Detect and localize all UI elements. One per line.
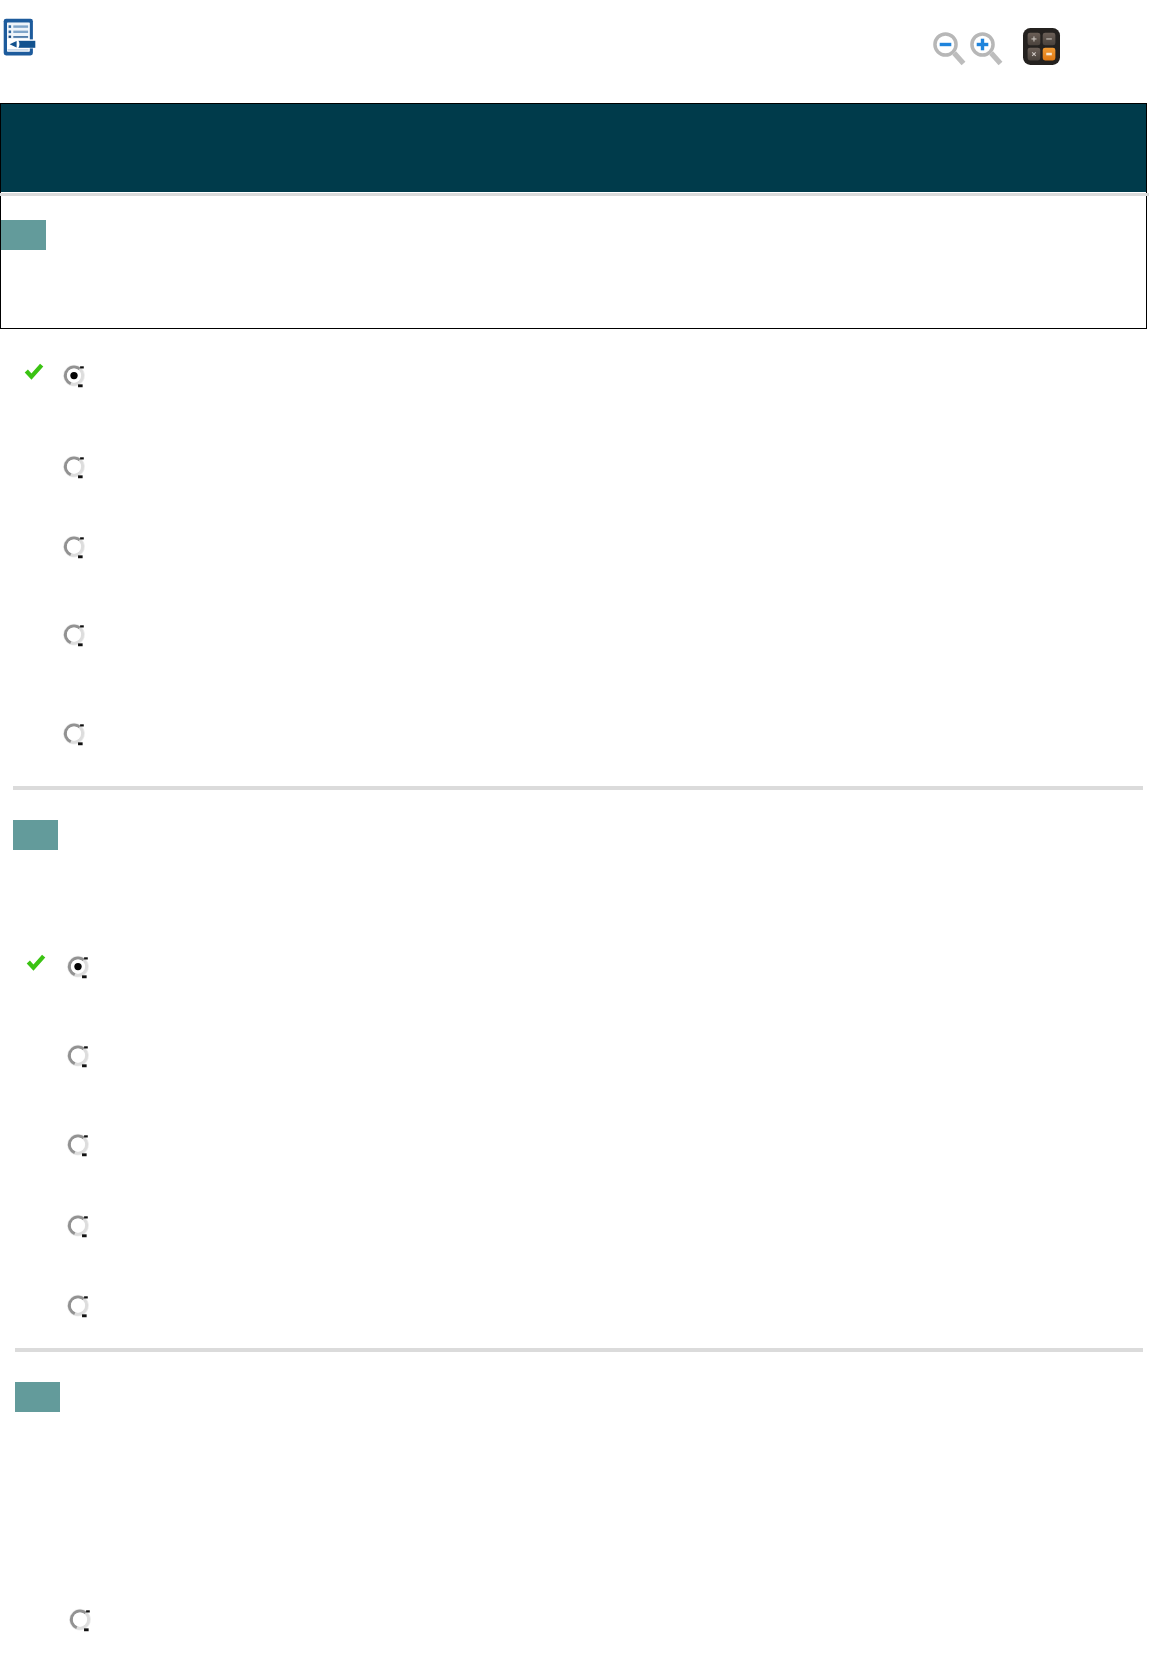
button[interactable]: Answer B [0,1015,1149,1095]
button[interactable]: Answer D [0,594,1149,674]
button[interactable]: Calculator [1023,28,1060,65]
button[interactable]: Answer C [0,1104,1149,1184]
button[interactable]: Survey [3,18,39,56]
button[interactable]: Answer E [0,1265,1149,1345]
button[interactable]: Answer E [0,690,1149,776]
button[interactable]: Question card [0,103,1147,329]
button[interactable]: Zoom in [970,32,1002,64]
button[interactable]: Answer A (correct) [0,334,1149,416]
button[interactable]: Answer C [0,506,1149,586]
button[interactable]: Answer D [0,1185,1149,1265]
button[interactable]: Answer B [0,426,1149,506]
button[interactable]: Zoom out [933,32,965,64]
button[interactable]: Answer A [0,1579,1149,1659]
button[interactable]: Answer A (correct) [0,925,1149,1007]
